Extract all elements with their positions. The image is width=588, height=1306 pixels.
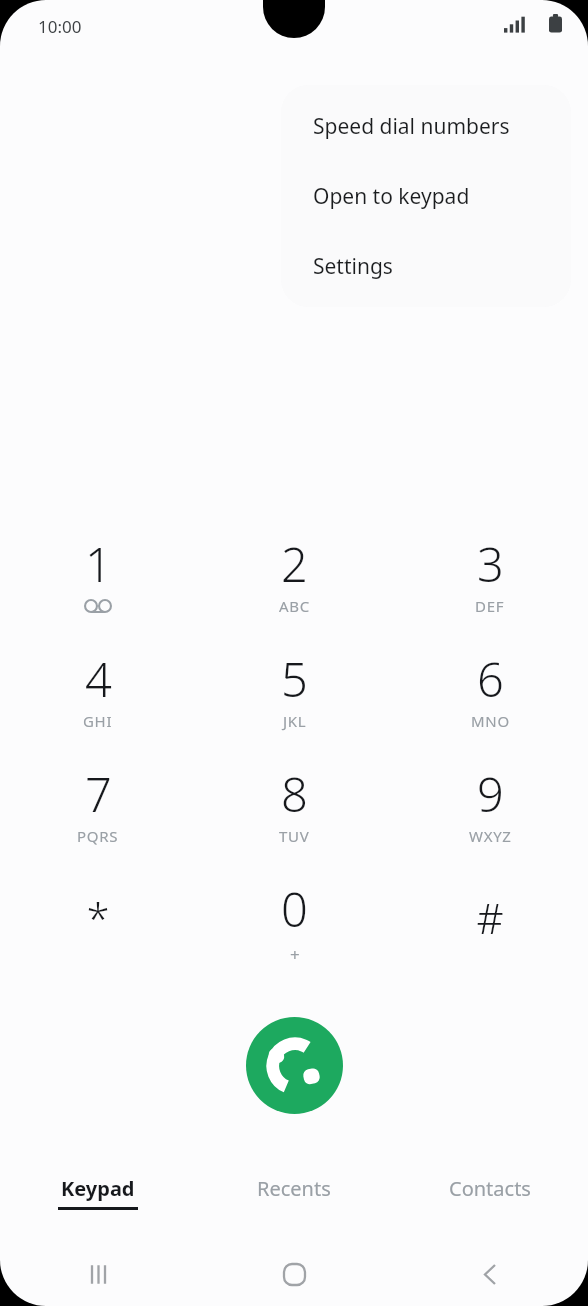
staticText: # [476,889,504,946]
staticText: 5 [281,647,308,711]
staticText: PQRS [77,826,119,846]
staticText: 2 [281,532,308,596]
button[interactable]: 0 [196,869,392,984]
staticText: Keypad [61,1175,135,1202]
staticText: WXYZ [469,826,512,846]
staticText: TUV [279,826,310,846]
button[interactable]: Call [246,1017,343,1114]
staticText: * [86,889,110,946]
staticText: Settings [313,252,393,281]
button[interactable]: Back [392,1245,588,1303]
button[interactable]: # [392,869,588,984]
button[interactable]: Open to keypad [281,161,571,231]
button[interactable]: 2 [196,524,392,639]
button[interactable]: 6 [392,639,588,754]
staticText: 7 [85,762,112,826]
staticText: 9 [477,762,504,826]
button[interactable]: Contacts [392,1162,588,1224]
button[interactable]: 7 [0,754,196,869]
staticText: 1 [85,532,112,596]
button[interactable]: 9 [392,754,588,869]
button[interactable]: Keypad [0,1162,196,1224]
button[interactable]: Recent apps [0,1245,196,1303]
staticText: ABC [279,596,310,616]
button[interactable]: 4 [0,639,196,754]
staticText: 3 [477,532,504,596]
staticText: JKL [283,711,307,731]
button[interactable]: 5 [196,639,392,754]
button[interactable]: 3 [392,524,588,639]
staticText: GHI [83,711,113,731]
staticText: 10:00 [38,15,82,38]
button[interactable]: * [0,869,196,984]
button[interactable]: Recents [196,1162,392,1224]
staticText: Open to keypad [313,182,470,211]
staticText: 4 [85,647,112,711]
button[interactable]: 8 [196,754,392,869]
button[interactable]: 1 [0,524,196,639]
staticText: Recents [257,1175,331,1202]
staticText: + [290,943,300,966]
staticText: 8 [281,762,308,826]
button[interactable]: Home [196,1245,392,1303]
staticText: DEF [475,596,505,616]
button[interactable]: Speed dial numbers [281,91,571,161]
button[interactable]: Settings [281,231,571,301]
staticText: Contacts [449,1175,531,1202]
staticText: MNO [471,711,510,731]
staticText: 6 [477,647,504,711]
staticText: Speed dial numbers [313,112,510,141]
staticText: 0 [281,877,308,941]
